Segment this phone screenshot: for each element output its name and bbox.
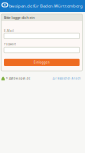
- staticText: Passwort: [4, 42, 16, 46]
- button[interactable]: © 2024 bw-sipan.de: [1, 76, 30, 80]
- staticText: © 2024 bw-sipan.de: [6, 77, 30, 80]
- button[interactable]: Einloggen: [4, 59, 80, 66]
- staticText: bw-sipan.de für Baden-Württemberg: [9, 3, 83, 9]
- button[interactable]: bw-sipan home: [1, 2, 8, 7]
- staticText: Bitte logge dich ein: [4, 15, 35, 20]
- button[interactable]: bw-sipan.de für Baden-Württemberg: [9, 3, 83, 9]
- staticText: Zur klassischen Ansicht: [52, 77, 81, 80]
- staticText: Einloggen: [34, 60, 50, 64]
- staticText: E-Mail: [4, 29, 14, 33]
- button[interactable]: Zur klassischen Ansicht: [52, 77, 81, 80]
